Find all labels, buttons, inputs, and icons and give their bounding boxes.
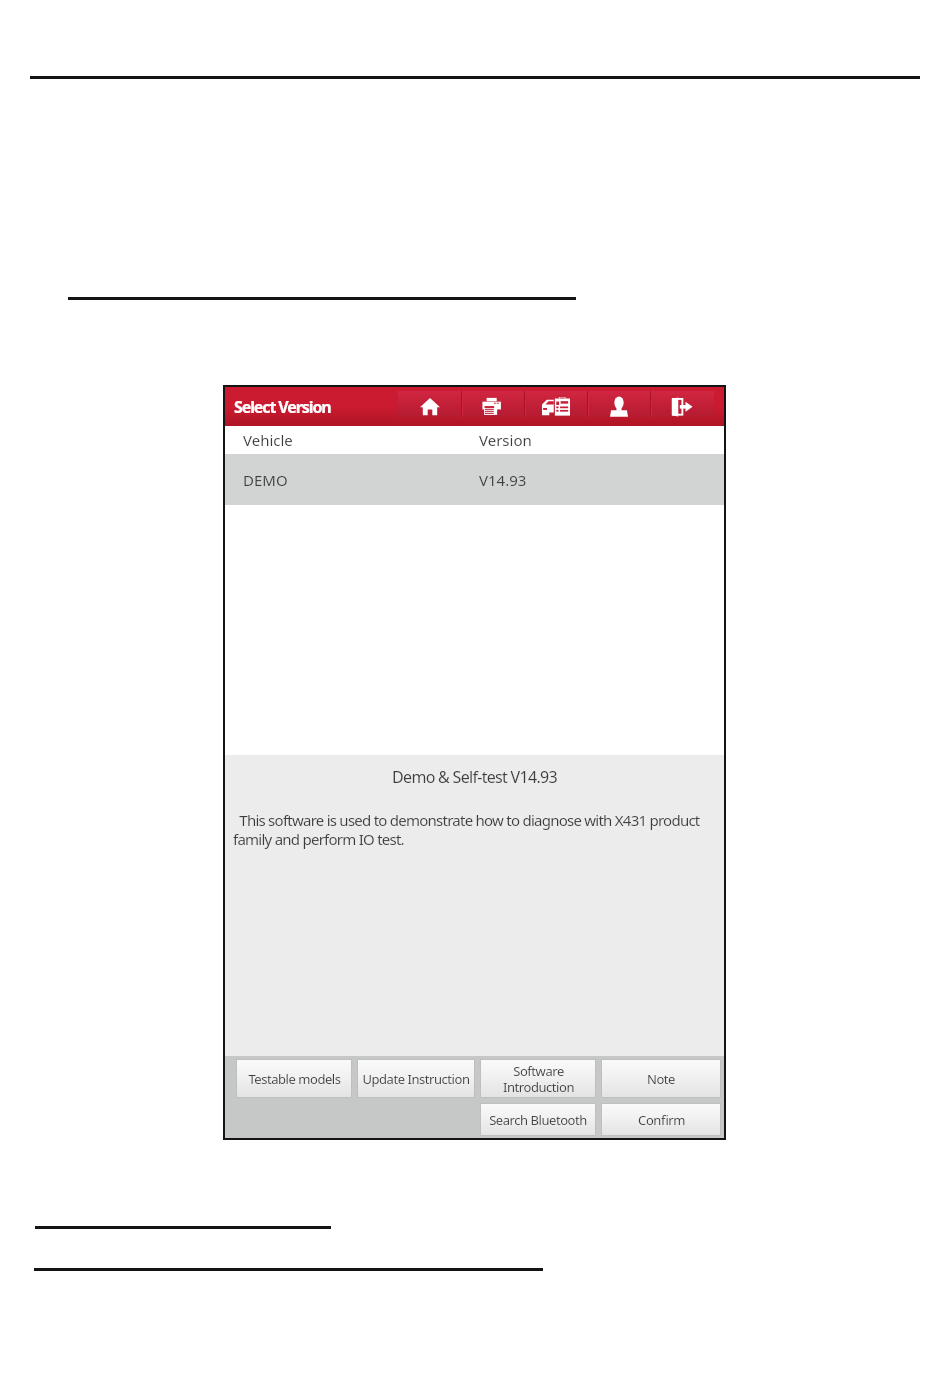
button[interactable]: Search Bluetooth xyxy=(481,1104,595,1135)
staticText: Note xyxy=(647,1070,675,1088)
button[interactable]: Update Instruction xyxy=(358,1060,474,1097)
button[interactable]: User xyxy=(587,387,650,426)
staticText: Update Instruction xyxy=(362,1070,470,1088)
staticText: Select Version xyxy=(234,396,331,418)
staticText: Confirm xyxy=(638,1111,685,1129)
staticText: Version xyxy=(479,430,532,450)
button[interactable]: Home xyxy=(398,387,461,426)
button[interactable]: Confirm xyxy=(602,1104,720,1135)
button[interactable]: DEMO xyxy=(225,454,724,505)
button[interactable]: Software Introduction xyxy=(481,1060,595,1097)
staticText: Vehicle xyxy=(243,430,293,450)
button[interactable]: Exit xyxy=(650,387,713,426)
button[interactable]: Note xyxy=(602,1060,720,1097)
button[interactable]: Vehicle xyxy=(225,426,724,454)
staticText: Search Bluetooth xyxy=(489,1111,587,1129)
button[interactable]: Diagnostic report xyxy=(524,387,587,426)
staticText: V14.93 xyxy=(479,470,527,490)
staticText: Demo & Self-test V14.93 xyxy=(225,766,724,788)
staticText: Testable models xyxy=(248,1070,341,1088)
staticText: Software Introduction xyxy=(503,1062,574,1095)
staticText: DEMO xyxy=(243,470,288,490)
staticText: This software is used to demonstrate how… xyxy=(233,810,720,849)
button[interactable]: Testable models xyxy=(237,1060,351,1097)
button[interactable]: Print xyxy=(461,387,524,426)
